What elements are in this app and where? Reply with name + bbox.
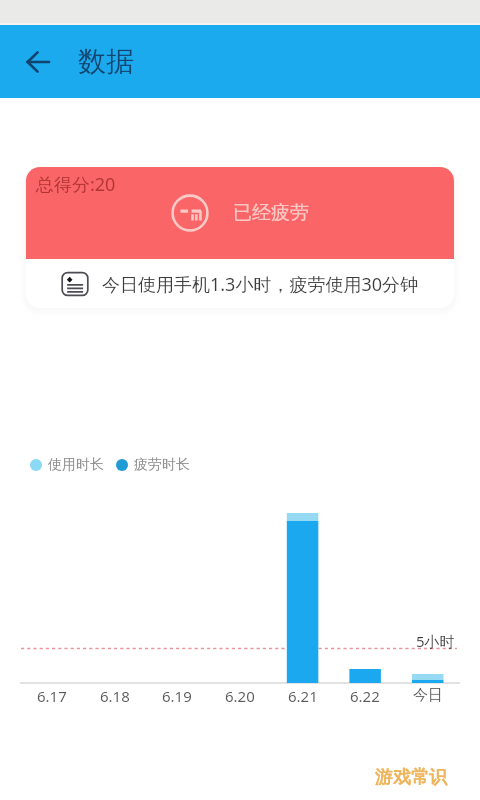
button[interactable]: 6.20 [209, 686, 271, 706]
staticText: 使用时长 [48, 456, 104, 474]
button[interactable]: 6.21 [272, 686, 334, 706]
staticText: 6.19 [162, 686, 192, 706]
staticText: 6.20 [225, 686, 255, 706]
other: Fatigue status [171, 194, 209, 232]
button[interactable]: 6.22 [334, 686, 396, 706]
staticText: 数据 [78, 44, 134, 79]
button[interactable]: 6.18 [84, 686, 146, 706]
staticText: 今日 [413, 686, 443, 705]
staticText: 总得分:20 [36, 172, 116, 197]
staticText: 6.17 [37, 686, 67, 706]
staticText: 已经疲劳 [233, 201, 309, 225]
staticText: 疲劳时长 [134, 456, 190, 474]
button[interactable]: 6.17 [21, 686, 83, 706]
staticText: 6.22 [350, 686, 380, 706]
staticText: 5小时 [416, 631, 455, 651]
other: Weekly usage chart [0, 0, 480, 800]
button[interactable]: 使用时长 [30, 456, 190, 474]
staticText: 6.21 [288, 686, 318, 706]
button[interactable]: Back [16, 40, 60, 84]
staticText: 6.18 [100, 686, 130, 706]
button[interactable]: 总得分:20 [26, 167, 454, 308]
button[interactable]: 今日 [397, 686, 459, 705]
staticText: 今日使用手机1.3小时，疲劳使用30分钟 [102, 272, 419, 297]
button[interactable]: 6.19 [146, 686, 208, 706]
staticText: 游戏常识 [375, 766, 447, 789]
